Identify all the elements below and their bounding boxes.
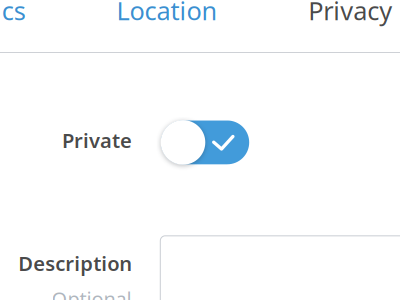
staticText: Private <box>62 127 132 154</box>
staticText: Description <box>18 249 132 277</box>
button[interactable]: Private <box>161 121 249 165</box>
staticText: Optional <box>51 285 131 300</box>
staticText: Privacy <box>308 0 392 28</box>
button[interactable]: Description <box>160 236 400 300</box>
staticText: Location <box>116 0 217 28</box>
button[interactable]: Location <box>116 0 217 28</box>
button[interactable]: cs <box>2 0 26 28</box>
staticText: cs <box>2 0 26 28</box>
